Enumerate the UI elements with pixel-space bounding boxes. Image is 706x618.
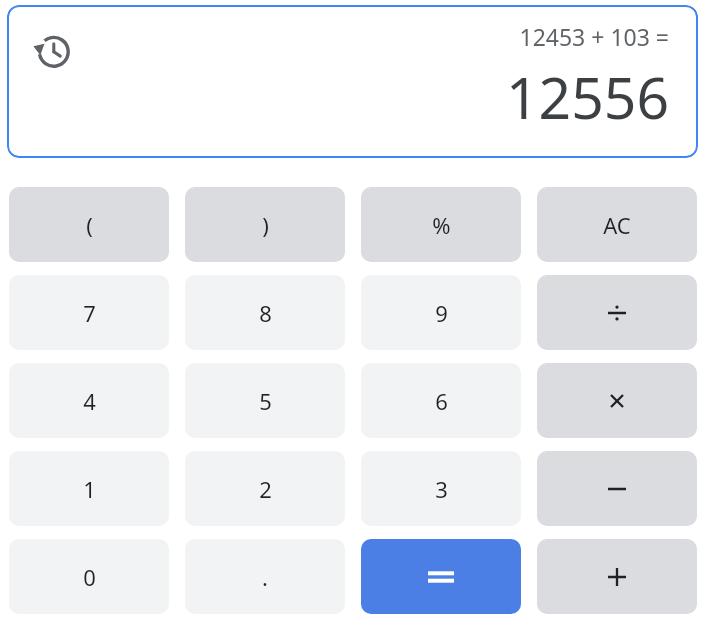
button[interactable]: Percent (361, 187, 521, 262)
button[interactable]: Add (537, 539, 697, 614)
staticText: 12556 (505, 58, 669, 136)
button[interactable]: 2 (185, 451, 345, 526)
staticText: . (262, 562, 268, 592)
staticText: ( (86, 210, 93, 240)
staticText: 0 (83, 562, 96, 592)
button[interactable]: 0 (9, 539, 169, 614)
button[interactable]: 7 (9, 275, 169, 350)
button[interactable]: Equals (361, 539, 521, 614)
staticText: 6 (435, 386, 448, 416)
button[interactable]: Close parenthesis (185, 187, 345, 262)
staticText: 9 (435, 298, 448, 328)
button[interactable]: Open parenthesis (9, 187, 169, 262)
staticText: 3 (435, 474, 448, 504)
button[interactable]: 8 (185, 275, 345, 350)
button[interactable]: Divide (537, 275, 697, 350)
staticText: 8 (259, 298, 272, 328)
button[interactable]: 6 (361, 363, 521, 438)
staticText: 2 (259, 474, 272, 504)
staticText: 12453 + 103 = (519, 21, 669, 52)
staticText: 1 (83, 474, 96, 504)
button[interactable]: 3 (361, 451, 521, 526)
button[interactable]: History (33, 31, 73, 71)
button[interactable]: 5 (185, 363, 345, 438)
staticText: % (432, 210, 451, 240)
button[interactable]: 1 (9, 451, 169, 526)
button[interactable]: All clear (537, 187, 697, 262)
staticText: ) (262, 210, 269, 240)
staticText: 4 (83, 386, 96, 416)
button[interactable]: 9 (361, 275, 521, 350)
button[interactable]: Multiply (537, 363, 697, 438)
button[interactable]: Subtract (537, 451, 697, 526)
button[interactable]: History (7, 5, 698, 158)
staticText: 5 (259, 386, 272, 416)
staticText: 7 (83, 298, 96, 328)
staticText: AC (603, 210, 631, 240)
button[interactable]: 4 (9, 363, 169, 438)
button[interactable]: Decimal point (185, 539, 345, 614)
